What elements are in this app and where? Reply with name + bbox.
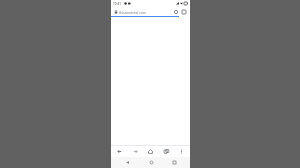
button[interactable]: Back bbox=[114, 146, 125, 157]
button[interactable]: Menu bbox=[176, 146, 187, 157]
button[interactable]: Back bbox=[120, 157, 134, 168]
button[interactable]: Switch tabs bbox=[180, 8, 187, 15]
staticText: thisisnotreal.com bbox=[119, 10, 146, 14]
button[interactable]: thisisnotreal.com bbox=[114, 7, 170, 16]
button[interactable]: Home bbox=[144, 157, 158, 168]
button[interactable]: Tabs bbox=[161, 146, 172, 157]
button[interactable]: Home bbox=[145, 146, 156, 157]
button[interactable]: Recents bbox=[167, 157, 181, 168]
button[interactable]: Forward bbox=[130, 146, 141, 157]
button[interactable]: Bookmark bbox=[172, 8, 179, 15]
staticText: 10:41 bbox=[113, 2, 122, 6]
